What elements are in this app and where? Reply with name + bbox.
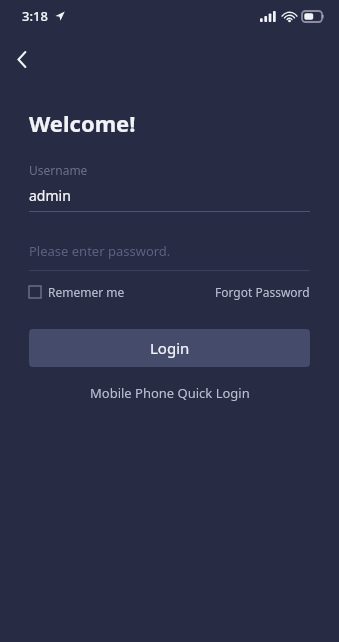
staticText: Login <box>150 338 190 358</box>
button[interactable]: Please enter password. <box>29 242 310 260</box>
staticText: Username <box>29 162 88 178</box>
staticText: 3:18 <box>22 7 48 25</box>
button[interactable]: Forgot Password <box>215 284 310 300</box>
staticText: Forgot Password <box>215 284 310 300</box>
staticText: Rememer me <box>48 284 125 300</box>
button[interactable]: Rememer me <box>29 284 125 300</box>
button[interactable]: admin <box>29 186 310 205</box>
button[interactable]: Back <box>6 43 38 75</box>
button[interactable]: Mobile Phone Quick Login <box>29 384 310 402</box>
staticText: Welcome! <box>29 108 136 138</box>
button[interactable]: Login <box>29 329 310 367</box>
staticText: Mobile Phone Quick Login <box>90 384 250 402</box>
